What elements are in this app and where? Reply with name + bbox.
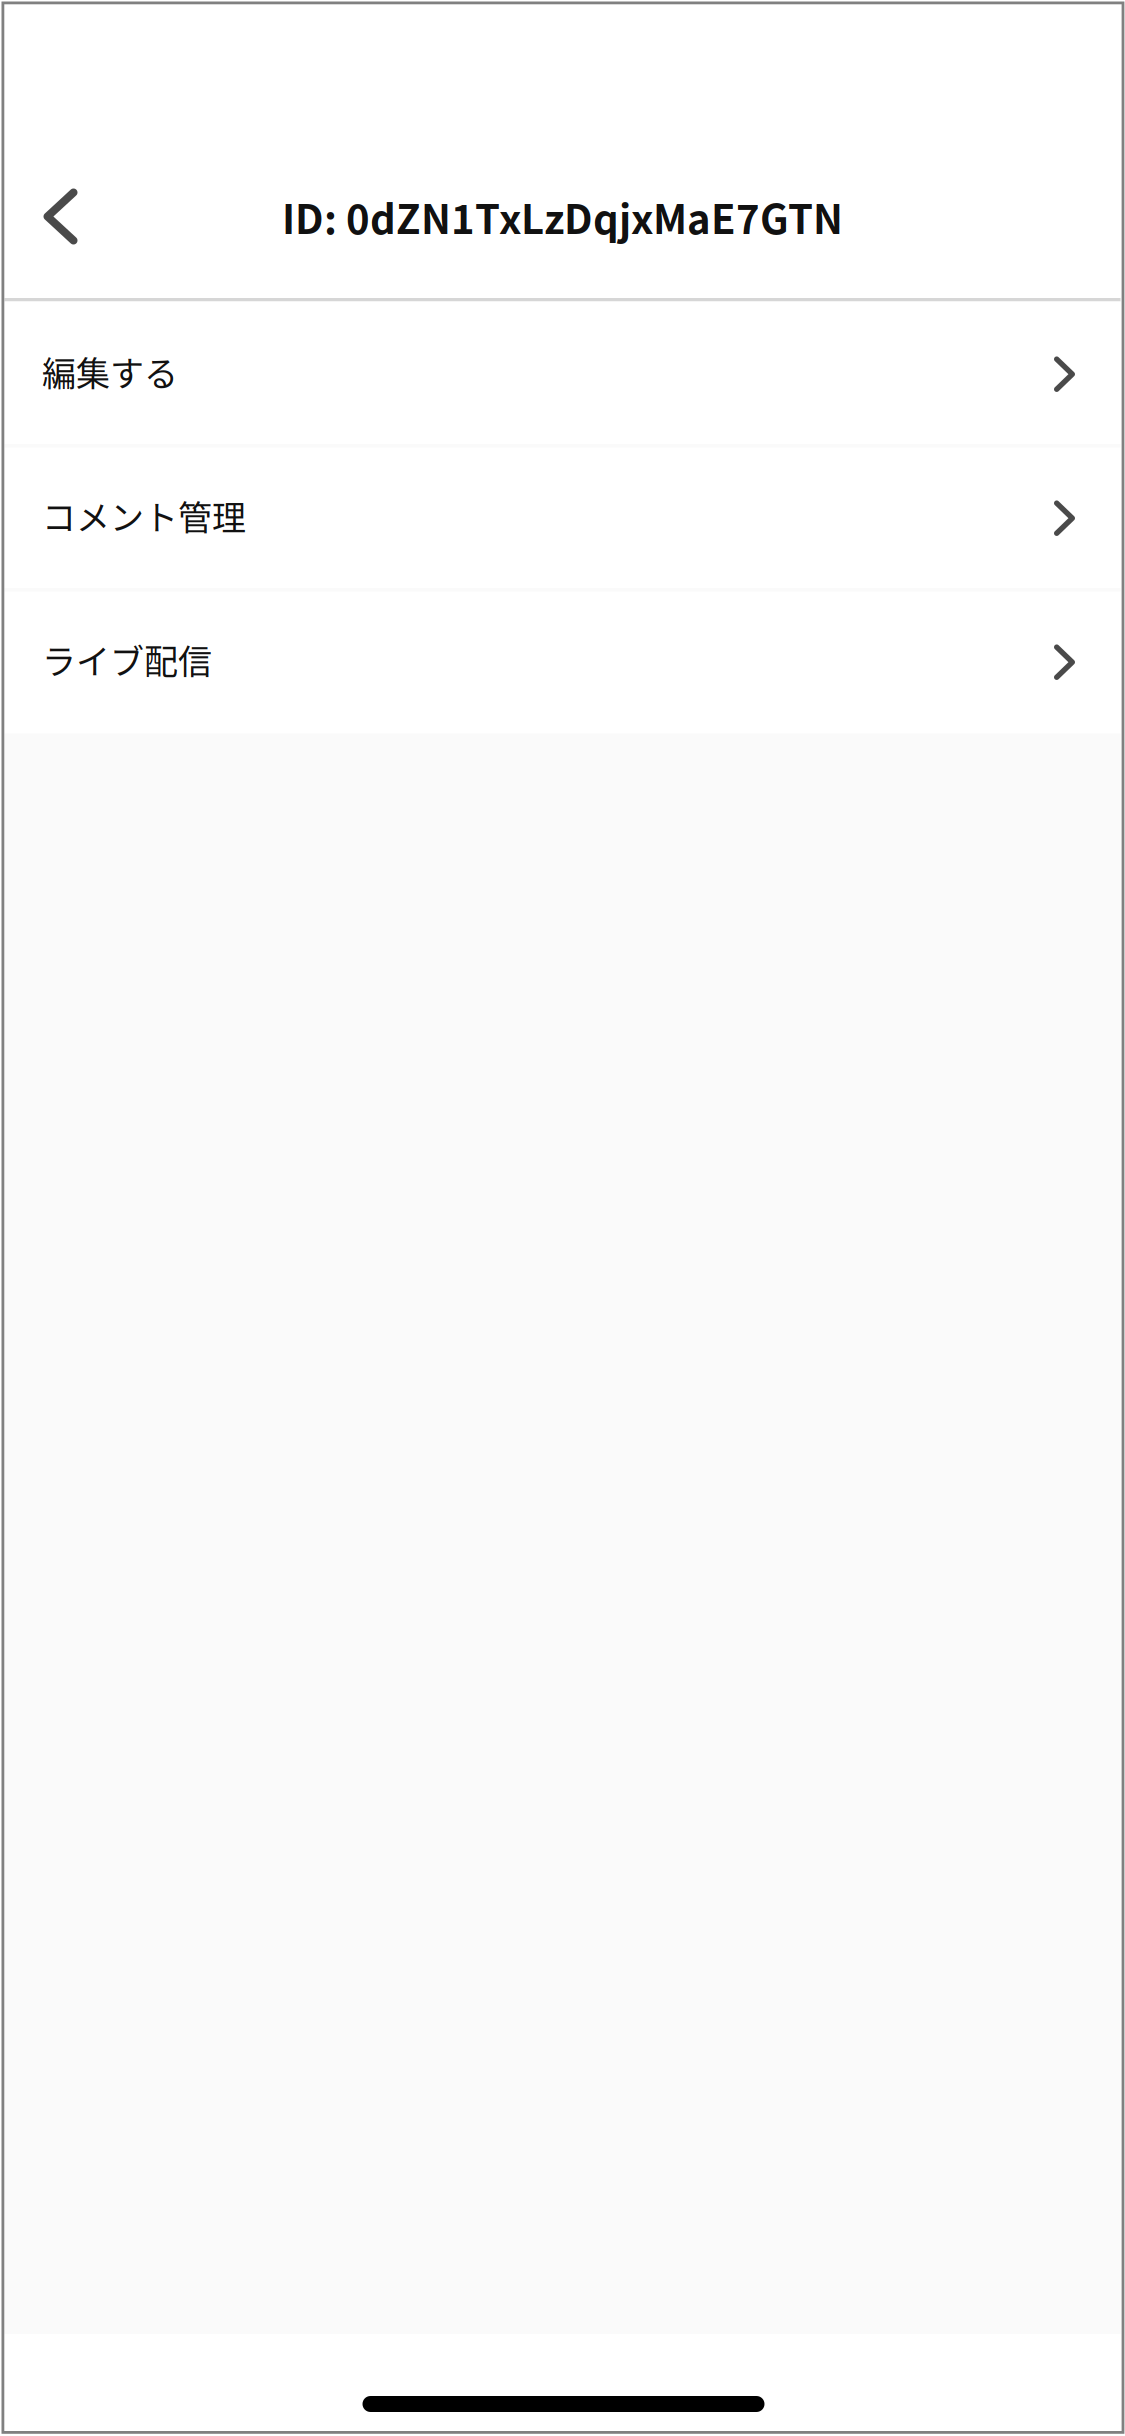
staticText: ライブ配信 — [42, 635, 212, 684]
staticText: ID: 0dZN1TxLzDqjxMaE7GTN — [282, 187, 843, 245]
button[interactable]: ライブ配信 — [4, 589, 1120, 733]
staticText: 編集する — [42, 347, 178, 396]
button[interactable]: コメント管理 — [4, 445, 1120, 589]
button[interactable]: Back — [4, 159, 107, 273]
staticText: コメント管理 — [42, 491, 246, 540]
button[interactable]: 編集する — [4, 301, 1120, 445]
